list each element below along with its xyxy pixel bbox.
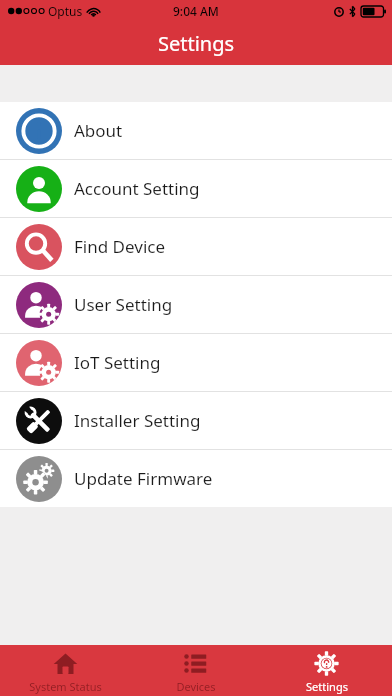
button[interactable]: User Setting <box>0 276 392 333</box>
staticText: 9:04 AM <box>173 3 219 19</box>
button[interactable]: IoT Setting <box>0 334 392 391</box>
staticText: Update Firmware <box>74 467 213 490</box>
staticText: About <box>74 119 123 142</box>
staticText: Settings <box>306 679 348 694</box>
staticText: System Status <box>29 679 102 694</box>
button[interactable]: About <box>0 102 392 159</box>
button[interactable]: Devices <box>130 645 261 696</box>
staticText: Devices <box>176 679 216 694</box>
staticText: Account Setting <box>74 177 200 200</box>
staticText: Optus <box>48 3 83 19</box>
button[interactable]: Settings <box>261 645 392 696</box>
button[interactable]: Account Setting <box>0 160 392 217</box>
button[interactable]: Installer Setting <box>0 392 392 449</box>
staticText: Settings <box>158 30 235 57</box>
staticText: User Setting <box>74 293 173 316</box>
staticText: Find Device <box>74 235 166 258</box>
button[interactable]: System Status <box>0 645 130 696</box>
button[interactable]: Find Device <box>0 218 392 275</box>
staticText: IoT Setting <box>74 351 161 374</box>
button[interactable]: Update Firmware <box>0 450 392 507</box>
staticText: Installer Setting <box>74 409 201 432</box>
